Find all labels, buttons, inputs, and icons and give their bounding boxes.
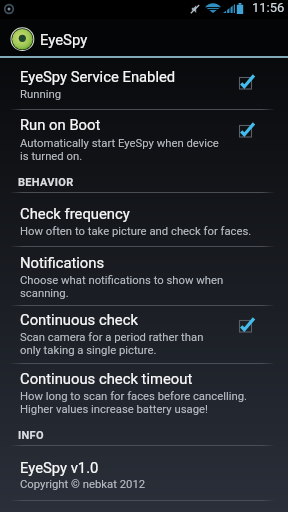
staticText: Check frequency (20, 205, 272, 222)
staticText: EyeSpy v1.0 (20, 459, 272, 476)
staticText: Automatically start EyeSpy when device i… (20, 137, 226, 163)
button[interactable]: EyeSpy v1.0 (0, 446, 288, 500)
other: Enabled (239, 319, 255, 333)
other: EyeSpy (10, 27, 34, 51)
staticText: BEHAVIOR (18, 176, 74, 189)
staticText: INFO (18, 429, 44, 442)
staticText: Copyright © nebkat 2012 (20, 478, 272, 491)
button[interactable]: Notifications (0, 247, 288, 305)
button[interactable]: EyeSpy Service Enabled (0, 58, 288, 109)
staticText: EyeSpy Service Enabled (20, 68, 226, 85)
staticText: 11:56 (252, 0, 285, 15)
button[interactable]: Check frequency (0, 193, 288, 246)
button[interactable]: Continuous check timeout (0, 364, 288, 423)
staticText: Choose what notifications to show when s… (20, 274, 272, 300)
staticText: Continuous check timeout (20, 370, 272, 387)
staticText: Continuous check (20, 311, 226, 328)
staticText: Notifications (20, 254, 272, 271)
staticText: Run on Boot (20, 116, 226, 133)
other: Enabled (239, 76, 255, 90)
staticText: EyeSpy (40, 31, 88, 48)
staticText: How long to scan for faces before cancel… (20, 390, 272, 416)
other: Enabled (239, 124, 255, 138)
staticText: Running (20, 88, 226, 101)
staticText: How often to take picture and check for … (20, 225, 272, 238)
staticText: Scan camera for a period rather than onl… (20, 331, 226, 357)
button[interactable]: Continuous check (0, 306, 288, 363)
button[interactable]: EyeSpy (0, 19, 288, 56)
button[interactable]: Run on Boot (0, 110, 288, 170)
